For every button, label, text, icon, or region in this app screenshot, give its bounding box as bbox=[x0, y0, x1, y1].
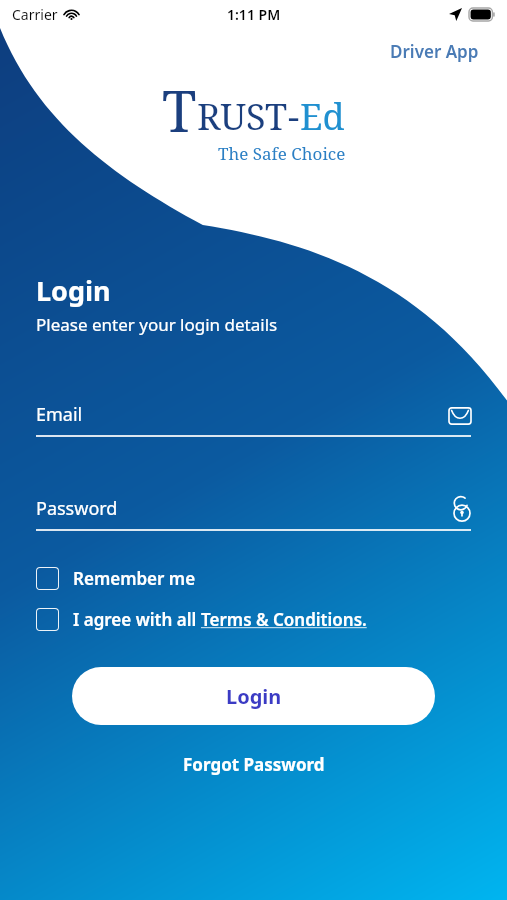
button[interactable]: Checkbox bbox=[36, 563, 471, 594]
staticText: I agree with all bbox=[73, 608, 201, 631]
button[interactable]: Checkbox bbox=[36, 604, 471, 635]
staticText: Forgot Password bbox=[183, 753, 325, 776]
button[interactable]: Driver App bbox=[386, 36, 483, 67]
staticText: Ed bbox=[300, 92, 345, 141]
staticText: Login bbox=[36, 272, 111, 309]
staticText: 1:11 PM bbox=[227, 5, 281, 24]
staticText: Password bbox=[36, 496, 451, 521]
other: Checkbox bbox=[36, 608, 59, 631]
button[interactable]: Login bbox=[72, 667, 435, 725]
staticText: Email bbox=[36, 402, 449, 427]
staticText: Login bbox=[226, 683, 282, 710]
staticText: Driver App bbox=[390, 40, 479, 63]
button[interactable]: Email bbox=[36, 402, 471, 437]
button[interactable]: Terms & Conditions. bbox=[201, 608, 367, 631]
other: Checkbox bbox=[36, 567, 59, 590]
other: Email bbox=[449, 405, 471, 427]
staticText: Please enter your login details bbox=[36, 313, 278, 336]
staticText: - bbox=[288, 92, 300, 141]
button[interactable]: Password bbox=[36, 495, 471, 531]
staticText: RUST bbox=[197, 92, 288, 141]
other: Show password bbox=[451, 495, 471, 521]
staticText: The Safe Choice bbox=[218, 142, 346, 165]
staticText: T bbox=[162, 72, 197, 148]
staticText: Carrier bbox=[12, 5, 58, 24]
button[interactable]: Forgot Password bbox=[177, 747, 331, 782]
staticText: Remember me bbox=[73, 567, 196, 590]
